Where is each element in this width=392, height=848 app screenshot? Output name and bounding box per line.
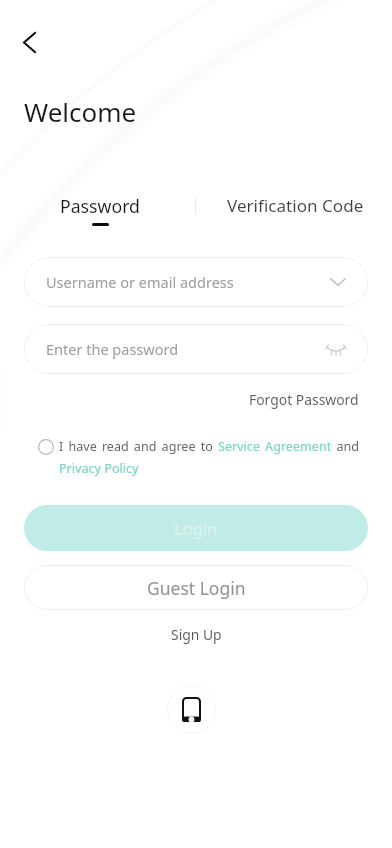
button[interactable]: Username or email address xyxy=(24,257,368,307)
button[interactable]: Show password xyxy=(324,337,348,361)
staticText: I have read and agree to Service Agreeme… xyxy=(59,438,359,477)
button[interactable]: Forgot Password xyxy=(249,390,359,409)
button[interactable]: Enter the password xyxy=(24,324,368,374)
button[interactable]: Password xyxy=(60,194,141,226)
button[interactable]: Agree to terms xyxy=(38,439,54,455)
button[interactable]: Guest Login xyxy=(24,565,368,610)
button[interactable]: Verification Code xyxy=(227,194,364,217)
staticText: Enter the password xyxy=(46,339,179,359)
staticText: Login xyxy=(174,517,218,539)
staticText: Guest Login xyxy=(147,576,246,600)
button[interactable]: Login xyxy=(24,505,368,551)
button[interactable]: Login with device xyxy=(167,685,216,734)
staticText: Password xyxy=(60,194,141,218)
staticText: Welcome xyxy=(24,94,137,129)
staticText: Username or email address xyxy=(46,272,234,292)
button[interactable]: Sign Up xyxy=(171,625,222,644)
button[interactable]: Back xyxy=(11,24,47,60)
